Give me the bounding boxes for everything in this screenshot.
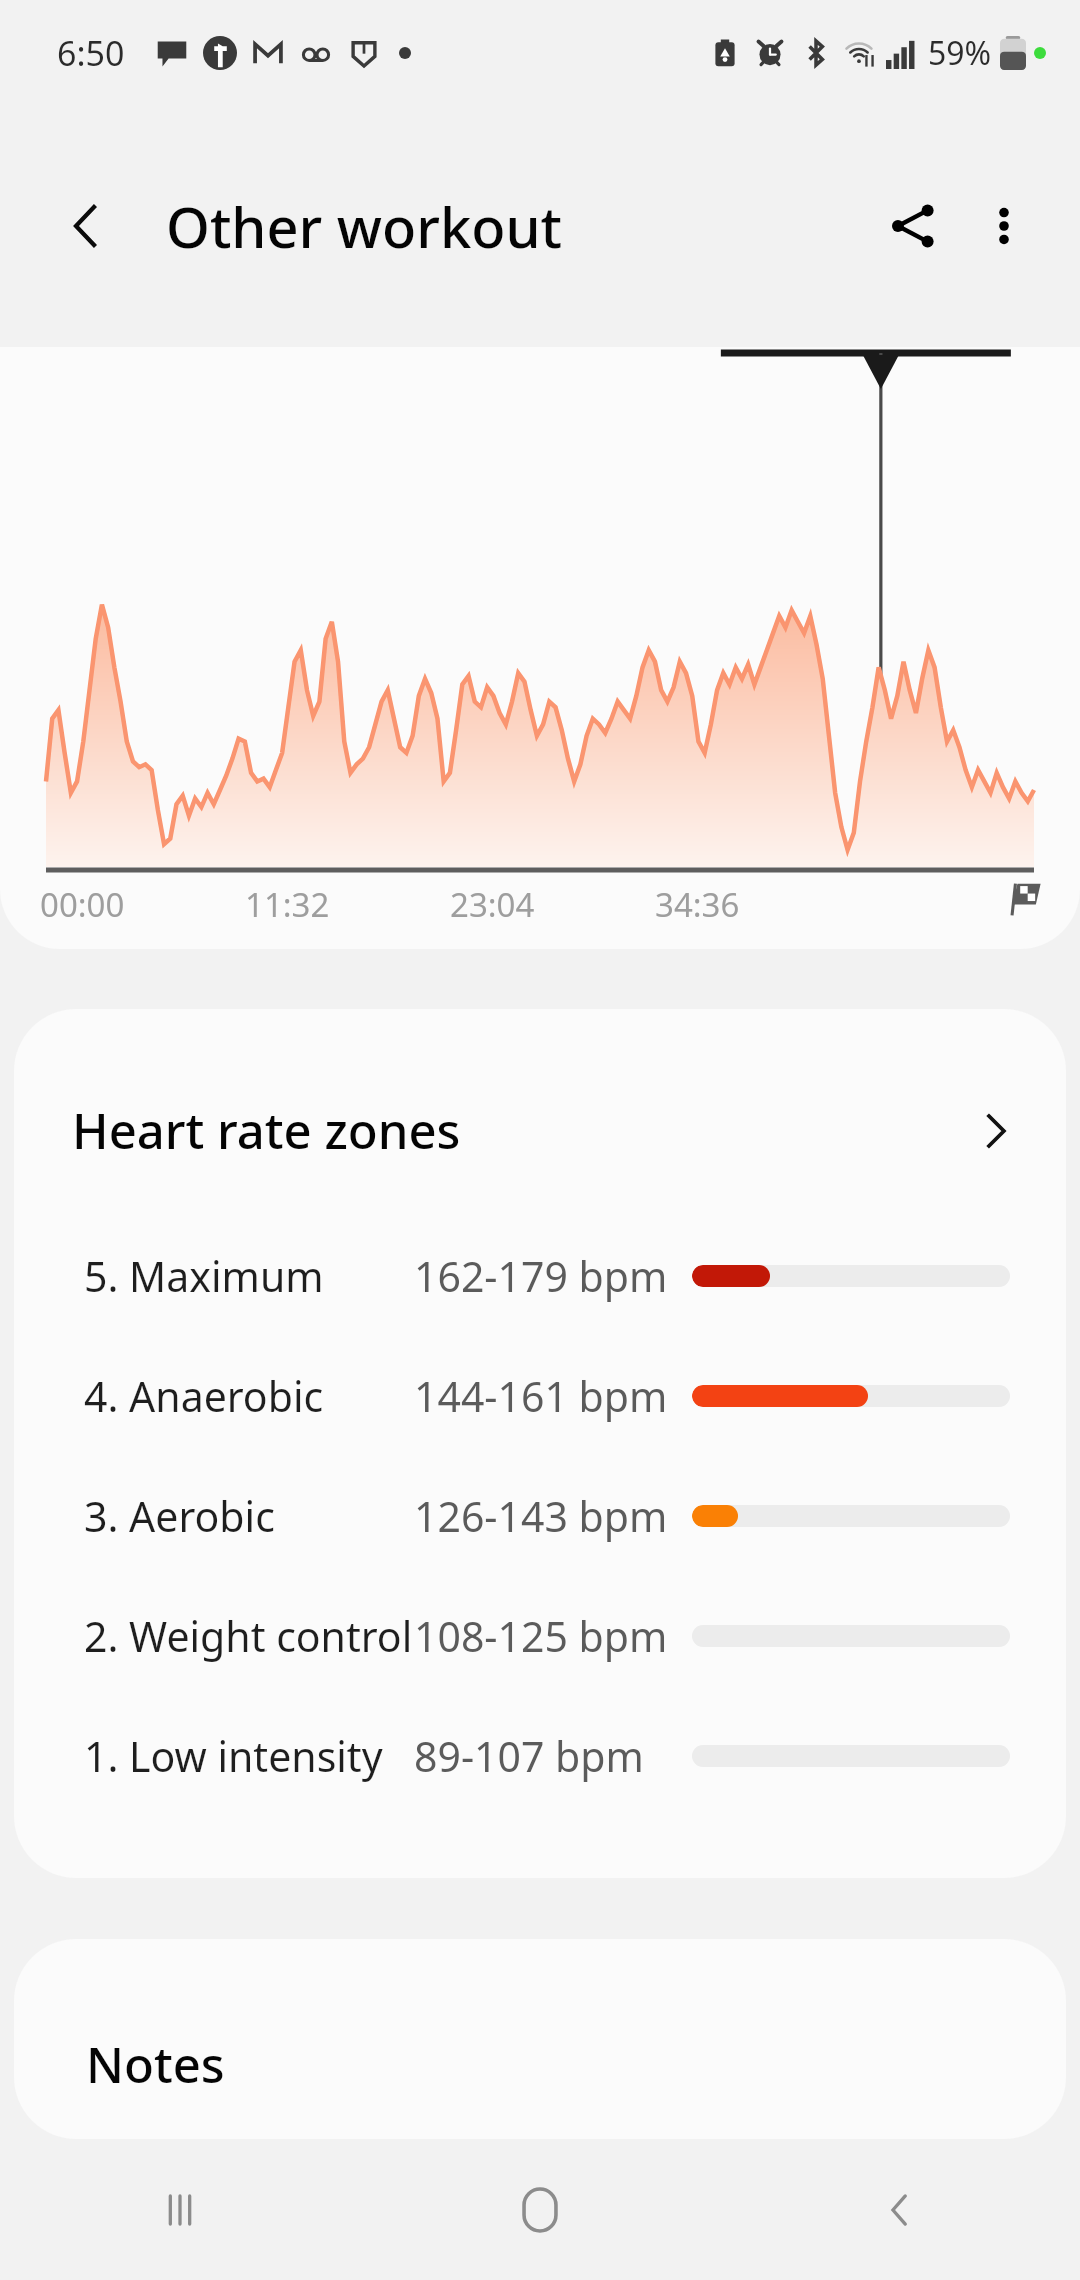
staticText: 5. Maximum	[84, 1248, 414, 1304]
staticText: 34:36	[655, 882, 740, 927]
button[interactable]: More options	[958, 180, 1050, 272]
staticText: 108-125 bpm	[414, 1608, 674, 1664]
button[interactable]: Back	[48, 188, 124, 264]
staticText: 00:00	[40, 882, 125, 927]
button[interactable]: 4. Anaerobic	[14, 1336, 1066, 1456]
button[interactable]: Back	[720, 2139, 1080, 2280]
button[interactable]: Heart rate zones	[14, 1009, 1066, 1216]
staticText: 3. Aerobic	[84, 1488, 414, 1544]
button[interactable]: Notes	[14, 1939, 1066, 2139]
staticText: Other workout	[166, 188, 563, 264]
button[interactable]: 2. Weight control	[14, 1576, 1066, 1696]
button[interactable]: 5. Maximum	[14, 1216, 1066, 1336]
staticText: 1. Low intensity	[84, 1728, 414, 1784]
staticText: 11:32	[245, 882, 330, 927]
staticText: Notes	[86, 2031, 225, 2098]
button[interactable]: 3. Aerobic	[14, 1456, 1066, 1576]
staticText: 23:04	[450, 882, 535, 927]
staticText: 162-179 bpm	[414, 1248, 674, 1304]
staticText: 144-161 bpm	[414, 1368, 674, 1424]
staticText: 89-107 bpm	[414, 1728, 674, 1784]
staticText: 4. Anaerobic	[84, 1368, 414, 1424]
staticText: 126-143 bpm	[414, 1488, 674, 1544]
button[interactable]: Share	[866, 180, 958, 272]
staticText: Heart rate zones	[72, 1097, 461, 1164]
staticText: 59%	[928, 31, 992, 75]
staticText: 2. Weight control	[84, 1608, 414, 1664]
staticText: 6:50	[57, 30, 125, 76]
button[interactable]: 1. Low intensity	[14, 1696, 1066, 1816]
button[interactable]: Recent apps	[0, 2139, 360, 2280]
button[interactable]: Home	[360, 2139, 720, 2280]
